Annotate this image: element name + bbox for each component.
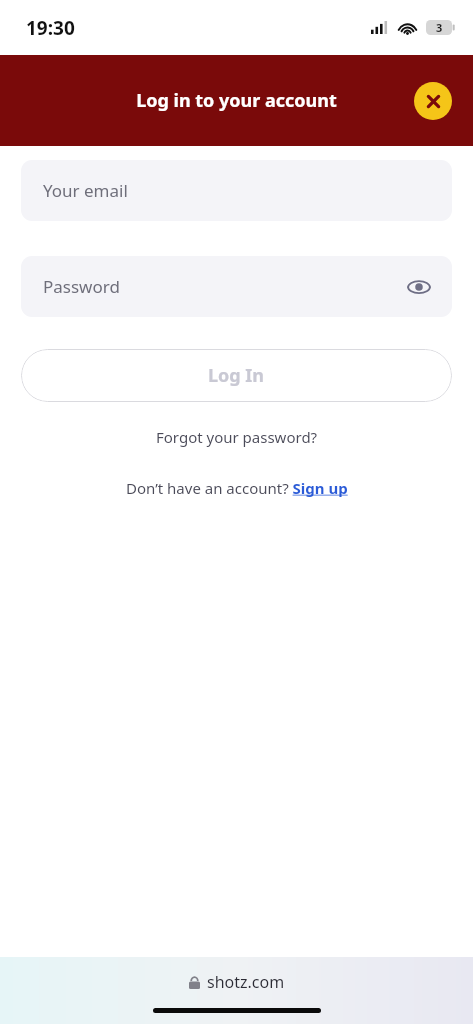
button[interactable]: Log In [21, 349, 452, 402]
staticText: Your email [43, 179, 128, 202]
staticText: Password [43, 275, 120, 298]
button[interactable]: Password [21, 256, 452, 317]
staticText: Log in to your account [136, 88, 337, 113]
button[interactable]: Show password [402, 270, 436, 304]
staticText: Log In [208, 363, 265, 388]
button[interactable]: Don’t have an account? Sign up [120, 476, 354, 500]
staticText: shotz.com [207, 971, 285, 993]
button[interactable]: shotz.com [189, 971, 285, 993]
staticText: 3 [436, 20, 443, 35]
button[interactable]: Your email [21, 160, 452, 221]
staticText: Don’t have an account? Sign up [126, 478, 348, 498]
staticText: 19:30 [26, 15, 75, 41]
staticText: Forgot your password? [156, 427, 318, 447]
button[interactable]: Forgot your password? [150, 425, 324, 449]
button[interactable]: Close [414, 82, 452, 120]
